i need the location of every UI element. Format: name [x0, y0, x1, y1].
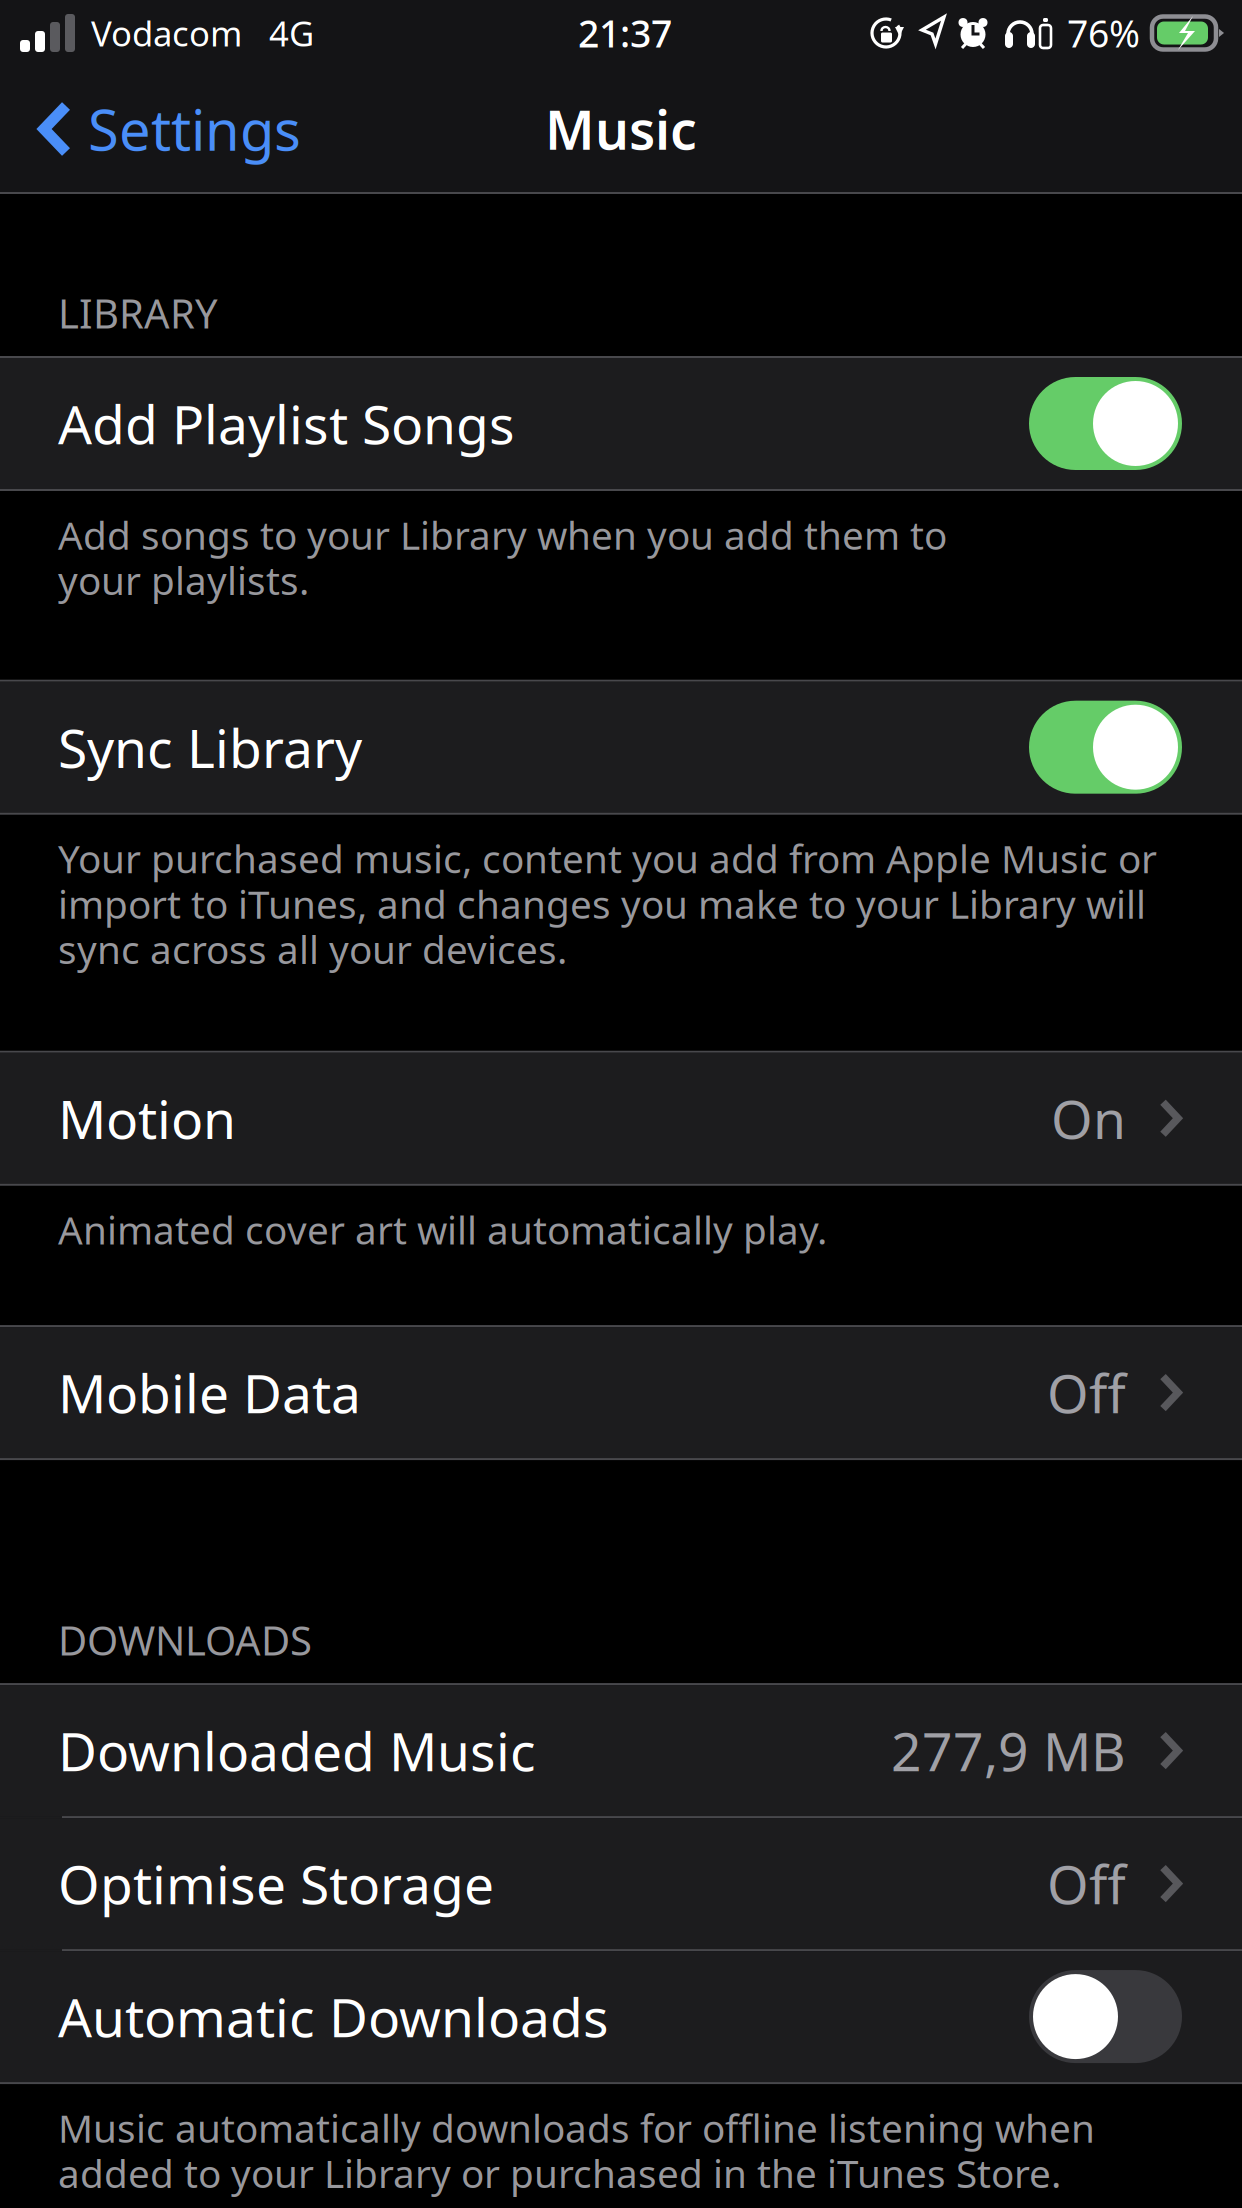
staticText: Your purchased music, content you add fr… [58, 833, 1157, 975]
staticText: Settings [88, 92, 301, 166]
staticText: Music [545, 94, 697, 164]
staticText: Sync Library [58, 712, 362, 783]
staticText: Off [1047, 1357, 1126, 1428]
staticText: Downloaded Music [58, 1715, 536, 1786]
staticText: 21:37 [578, 8, 672, 58]
button[interactable]: Sync Library [0, 682, 1242, 813]
staticText: On [1051, 1083, 1126, 1154]
staticText: Animated cover art will automatically pl… [58, 1204, 827, 1255]
button[interactable]: Motion [0, 1053, 1242, 1184]
staticText: Off [1047, 1848, 1126, 1919]
staticText: Automatic Downloads [58, 1981, 609, 2052]
staticText: LIBRARY [58, 286, 218, 339]
staticText: 76% [1067, 8, 1140, 58]
button[interactable]: Mobile Data [0, 1327, 1242, 1458]
staticText: Add Playlist Songs [58, 388, 515, 459]
staticText: Optimise Storage [58, 1848, 494, 1919]
staticText: 4G [269, 10, 314, 56]
button[interactable]: Automatic Downloads [0, 1951, 1242, 2082]
button[interactable]: Optimise Storage [0, 1818, 1242, 1949]
staticText: DOWNLOADS [58, 1613, 312, 1667]
staticText: Motion [58, 1083, 236, 1154]
staticText: 277,9 MB [891, 1715, 1126, 1786]
staticText: Mobile Data [58, 1357, 361, 1428]
staticText: Add songs to your Library when you add t… [58, 509, 947, 606]
staticText: Music automatically downloads for offlin… [58, 2102, 1095, 2199]
staticText: Vodacom [91, 10, 242, 56]
button[interactable]: Settings [0, 66, 325, 192]
button[interactable]: Downloaded Music [0, 1685, 1242, 1816]
button[interactable]: Add Playlist Songs [0, 358, 1242, 489]
